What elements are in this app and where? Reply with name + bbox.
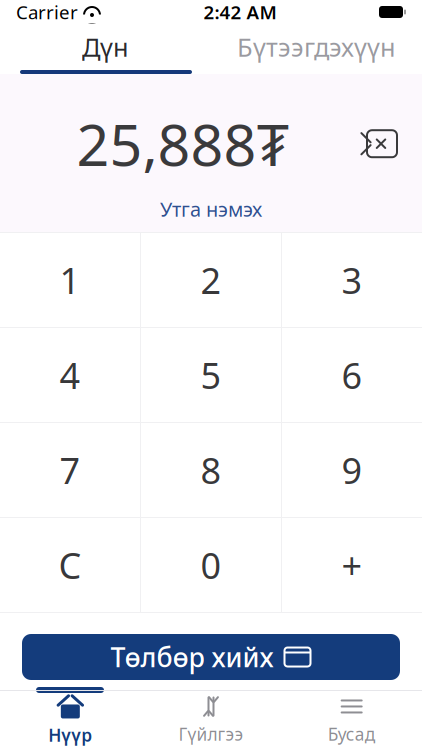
- button[interactable]: C: [0, 518, 140, 612]
- staticText: 5: [200, 351, 221, 399]
- button[interactable]: 7: [0, 423, 140, 517]
- button[interactable]: Төлбөр хийх: [22, 634, 400, 680]
- staticText: 3: [341, 256, 362, 304]
- button[interactable]: 8: [141, 423, 281, 517]
- button[interactable]: Утга нэмэх: [150, 192, 272, 226]
- button[interactable]: Delete: [350, 122, 406, 166]
- button[interactable]: Нүүр: [0, 690, 141, 750]
- staticText: 7: [59, 446, 80, 494]
- button[interactable]: 0: [141, 518, 281, 612]
- staticText: C: [58, 541, 81, 589]
- staticText: Carrier: [16, 0, 78, 24]
- button[interactable]: Бүтээгдэхүүн: [211, 24, 422, 70]
- button[interactable]: 2: [141, 233, 281, 327]
- staticText: 1: [59, 256, 80, 304]
- staticText: Гүйлгээ: [178, 722, 243, 745]
- staticText: +: [341, 541, 362, 589]
- staticText: 6: [341, 351, 362, 399]
- button[interactable]: +: [282, 518, 422, 612]
- staticText: 8: [200, 446, 221, 494]
- staticText: 25,888₮: [76, 106, 289, 182]
- button[interactable]: Гүйлгээ: [141, 690, 281, 750]
- staticText: 4: [59, 351, 80, 399]
- staticText: Утга нэмэх: [160, 196, 262, 222]
- staticText: Бусад: [328, 722, 376, 745]
- staticText: 2:42 AM: [203, 0, 276, 24]
- staticText: Дүн: [82, 30, 129, 64]
- button[interactable]: Бусад: [281, 690, 422, 750]
- staticText: 9: [341, 446, 362, 494]
- button[interactable]: 3: [282, 233, 422, 327]
- button[interactable]: 9: [282, 423, 422, 517]
- staticText: 0: [200, 541, 221, 589]
- button[interactable]: 4: [0, 328, 140, 422]
- button[interactable]: 6: [282, 328, 422, 422]
- staticText: Бүтээгдэхүүн: [237, 30, 396, 64]
- button[interactable]: 1: [0, 233, 140, 327]
- button[interactable]: 5: [141, 328, 281, 422]
- staticText: Төлбөр хийх: [110, 639, 273, 675]
- button[interactable]: Дүн: [0, 24, 211, 70]
- staticText: 2: [200, 256, 221, 304]
- staticText: Нүүр: [48, 723, 92, 746]
